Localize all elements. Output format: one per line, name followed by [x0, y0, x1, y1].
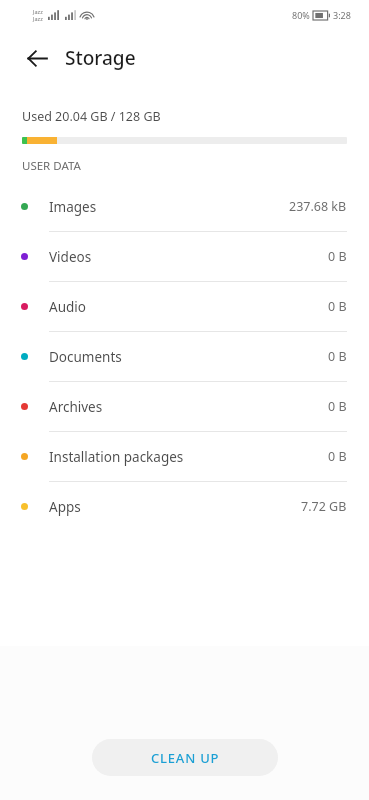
staticText: Documents [49, 348, 122, 366]
button[interactable]: Documents [0, 332, 369, 381]
staticText: 7.72 GB [301, 498, 347, 515]
staticText: CLEAN UP [151, 749, 220, 767]
staticText: Archives [49, 398, 103, 416]
button[interactable]: Installation packages [0, 432, 369, 481]
button[interactable]: Videos [0, 232, 369, 281]
staticText: Audio [49, 298, 86, 316]
staticText: 237.68 kB [289, 198, 347, 215]
button[interactable]: Archives [0, 382, 369, 431]
staticText: 80% [292, 9, 310, 21]
staticText: 0 B [328, 298, 347, 315]
button[interactable]: Images [0, 182, 369, 231]
staticText: Installation packages [49, 448, 184, 466]
button[interactable]: Apps [0, 482, 369, 531]
staticText: Videos [49, 248, 92, 266]
staticText: 0 B [328, 448, 347, 465]
staticText: Jazz [33, 8, 43, 15]
button[interactable]: Back [14, 35, 60, 81]
staticText: 3:28 [333, 9, 351, 21]
staticText: 0 B [328, 348, 347, 365]
staticText: Jazz [33, 15, 43, 22]
staticText: 0 B [328, 248, 347, 265]
staticText: USER DATA [22, 158, 81, 174]
button[interactable]: Audio [0, 282, 369, 331]
staticText: Storage [65, 45, 136, 71]
staticText: Images [49, 198, 97, 216]
staticText: 0 B [328, 398, 347, 415]
staticText: Used 20.04 GB / 128 GB [22, 108, 161, 125]
staticText: Apps [49, 498, 81, 516]
button[interactable]: CLEAN UP [92, 739, 278, 776]
